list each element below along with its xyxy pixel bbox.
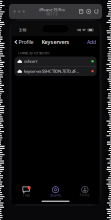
staticText: CONNECTED KEYSERVERS bbox=[18, 51, 49, 55]
staticText: keyserver.SSHCTION-7E7D-4F43-… bbox=[24, 68, 79, 74]
button[interactable]: sshcert bbox=[14, 56, 96, 66]
button[interactable]: keyserver.SSHCTION-7E7D-4F43-… bbox=[14, 66, 96, 76]
button[interactable]: Record screen bbox=[86, 9, 91, 14]
button[interactable]: Chats bbox=[11, 185, 41, 198]
staticText: iPhone 15 Pro bbox=[39, 7, 64, 12]
staticText: sshcert bbox=[24, 59, 37, 64]
staticText: Profile bbox=[19, 38, 34, 46]
staticText: iOS 17.2 bbox=[46, 12, 58, 16]
staticText: Add bbox=[87, 38, 96, 46]
button[interactable]: Add bbox=[87, 37, 99, 47]
staticText: Keyservers bbox=[41, 38, 69, 46]
button[interactable]: Window bbox=[79, 9, 83, 14]
button[interactable]: Profile bbox=[70, 185, 99, 198]
button[interactable]: Profile bbox=[11, 37, 34, 47]
button[interactable]: Rotate bbox=[94, 9, 98, 14]
staticText: Profile bbox=[80, 194, 90, 197]
button[interactable]: Security bbox=[41, 185, 70, 198]
staticText: 3:10 bbox=[19, 27, 26, 33]
staticText: Security bbox=[50, 194, 60, 197]
staticText: Chats bbox=[23, 194, 30, 197]
